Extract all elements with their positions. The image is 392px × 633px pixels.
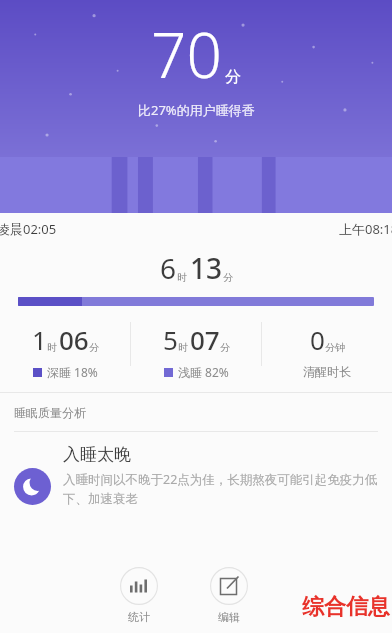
staticText: 70 bbox=[151, 12, 222, 96]
staticText: 入睡太晚 bbox=[63, 444, 131, 465]
staticText: 统计 bbox=[128, 610, 150, 624]
staticText: 06 bbox=[59, 322, 89, 357]
button[interactable]: Statistics bbox=[116, 563, 162, 628]
staticText: 清醒时长 bbox=[303, 364, 351, 379]
staticText: 6 bbox=[160, 249, 177, 287]
staticText: 07 bbox=[190, 322, 220, 357]
staticText: 时 bbox=[177, 271, 187, 284]
staticText: 5 bbox=[163, 322, 178, 357]
staticText: 分 bbox=[220, 341, 230, 354]
staticText: 综合信息 bbox=[302, 593, 390, 621]
staticText: 睡眠质量分析 bbox=[14, 405, 86, 420]
staticText: 比27%的用户睡得香 bbox=[138, 101, 255, 119]
button[interactable]: 入睡太晚 bbox=[0, 432, 392, 507]
staticText: 分 bbox=[225, 67, 241, 87]
staticText: 入睡时间以不晚于22点为佳，长期熬夜可能引起免疫力低下、加速衰老 bbox=[63, 471, 382, 507]
staticText: 浅睡 82% bbox=[178, 364, 229, 380]
button[interactable]: Edit bbox=[206, 563, 252, 628]
staticText: 时 bbox=[47, 341, 57, 354]
staticText: 编辑 bbox=[218, 610, 240, 624]
staticText: 1 bbox=[32, 322, 47, 357]
staticText: 分 bbox=[223, 271, 233, 284]
staticText: 13 bbox=[190, 249, 223, 287]
staticText: 分钟 bbox=[325, 341, 345, 354]
staticText: 深睡 18% bbox=[47, 364, 98, 380]
staticText: 0 bbox=[310, 322, 325, 357]
staticText: 分 bbox=[89, 341, 99, 354]
staticText: 上午08:18 bbox=[339, 220, 392, 238]
staticText: 时 bbox=[178, 341, 188, 354]
staticText: 凌晨02:05 bbox=[0, 220, 57, 238]
